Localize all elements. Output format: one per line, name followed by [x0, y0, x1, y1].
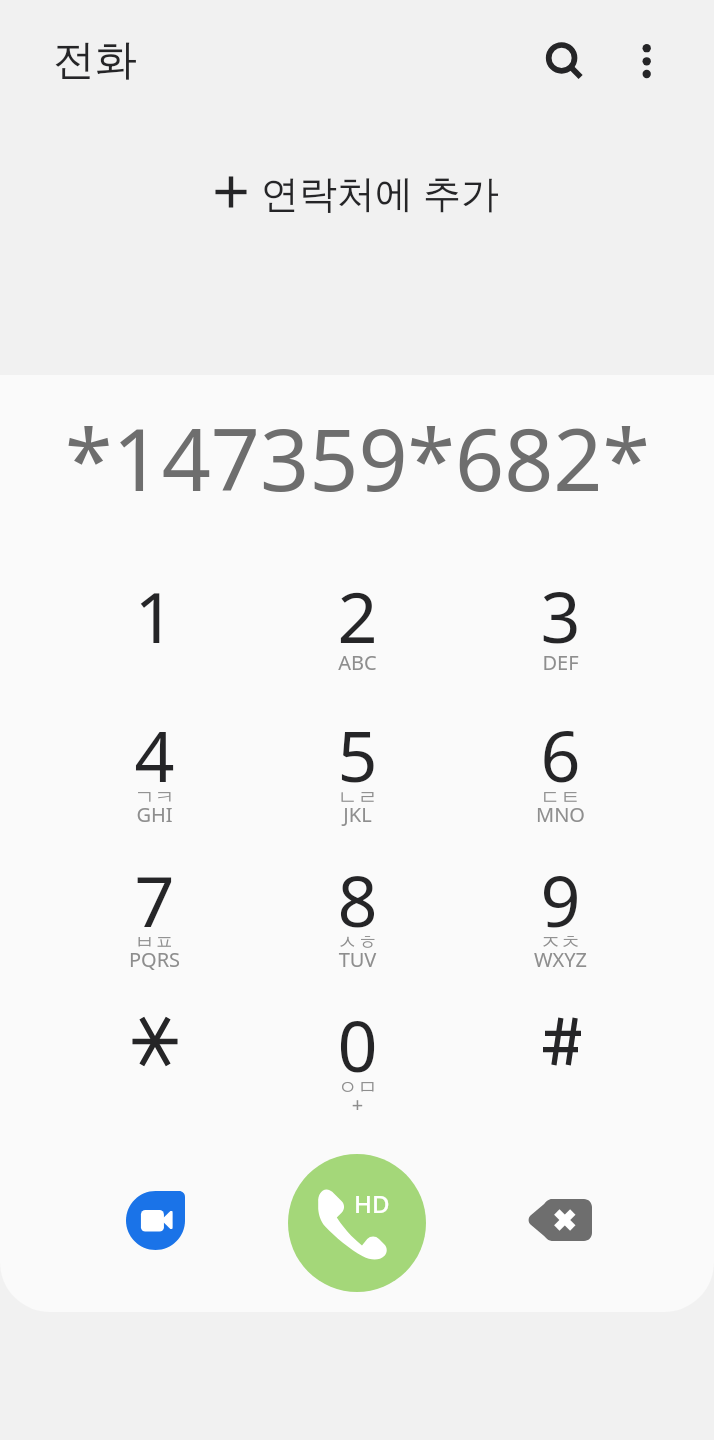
staticText: 3: [459, 568, 662, 663]
staticText: ㅂㅍ: [53, 930, 256, 955]
button[interactable]: More options: [611, 22, 683, 94]
staticText: 1: [53, 568, 256, 663]
staticText: +: [256, 1091, 459, 1118]
button[interactable]: Star: [53, 982, 256, 1122]
button[interactable]: 8: [256, 837, 459, 977]
staticText: MNO: [459, 801, 662, 828]
button[interactable]: 5: [256, 692, 459, 832]
staticText: ㅅㅎ: [256, 930, 459, 955]
button[interactable]: 1: [53, 553, 256, 693]
button[interactable]: 4: [53, 692, 256, 832]
staticText: HD: [354, 1187, 390, 1220]
staticText: ㅈㅊ: [459, 930, 662, 955]
staticText: PQRS: [53, 946, 256, 973]
button[interactable]: Video call: [115, 1180, 195, 1260]
staticText: TUV: [256, 946, 459, 973]
staticText: 4: [53, 707, 256, 802]
staticText: GHI: [53, 801, 256, 828]
staticText: 9: [459, 852, 662, 947]
staticText: 2: [256, 568, 459, 663]
staticText: 연락처에 추가: [261, 166, 499, 218]
staticText: DEF: [459, 649, 662, 676]
button[interactable]: 9: [459, 837, 662, 977]
staticText: 6: [459, 707, 662, 802]
button[interactable]: 전화: [33, 18, 157, 102]
button[interactable]: 7: [53, 837, 256, 977]
staticText: ㄱㅋ: [53, 785, 256, 810]
staticText: ABC: [256, 649, 459, 676]
button[interactable]: 6: [459, 692, 662, 832]
staticText: 8: [256, 852, 459, 947]
button[interactable]: Backspace: [519, 1180, 601, 1260]
staticText: 0: [256, 997, 459, 1092]
button[interactable]: 2: [256, 553, 459, 693]
staticText: WXYZ: [459, 946, 662, 973]
staticText: 5: [256, 707, 459, 802]
button[interactable]: Pound: [459, 982, 662, 1122]
button[interactable]: 연락처에 추가: [195, 154, 519, 230]
staticText: 7: [53, 852, 256, 947]
staticText: 전화: [53, 34, 137, 87]
button[interactable]: 3: [459, 553, 662, 693]
staticText: ㅇㅁ: [256, 1075, 459, 1100]
staticText: JKL: [256, 801, 459, 828]
staticText: ㄴㄹ: [256, 785, 459, 810]
staticText: ㄷㅌ: [459, 785, 662, 810]
staticText: *147359*682*: [65, 399, 650, 516]
button[interactable]: 0: [256, 982, 459, 1122]
button[interactable]: Call: [288, 1154, 426, 1292]
button[interactable]: Search: [525, 22, 597, 94]
